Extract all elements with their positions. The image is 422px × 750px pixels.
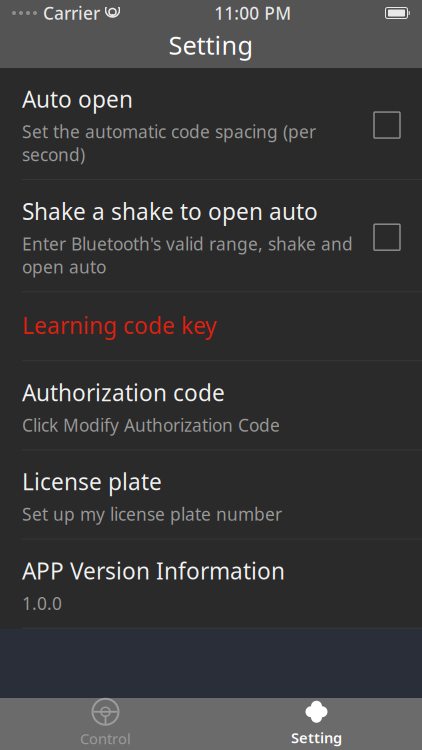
- button[interactable]: Shake a shake to open auto: [0, 180, 422, 292]
- staticText: APP Version Information: [22, 556, 285, 586]
- button[interactable]: License plate: [0, 450, 422, 540]
- staticText: Click Modify Authorization Code: [22, 413, 280, 436]
- staticText: Authorization code: [22, 377, 225, 407]
- staticText: License plate: [22, 466, 162, 497]
- staticText: Enter Bluetooth's valid range, shake and…: [22, 232, 353, 278]
- staticText: 1.0.0: [22, 592, 62, 615]
- staticText: Setting: [291, 728, 342, 747]
- staticText: Control: [80, 729, 131, 748]
- button[interactable]: Authorization code: [0, 361, 422, 450]
- staticText: Carrier: [43, 1, 100, 24]
- button[interactable]: Learning code key: [0, 292, 422, 361]
- button[interactable]: APP Version Information: [0, 540, 422, 629]
- staticText: Set up my license plate number: [22, 503, 282, 526]
- staticText: 11:00 PM: [214, 1, 291, 24]
- staticText: Setting: [168, 28, 253, 62]
- staticText: Auto open: [22, 84, 133, 114]
- button[interactable]: Setting: [211, 693, 422, 750]
- staticText: Set the automatic code spacing (per seco…: [22, 120, 316, 166]
- button[interactable]: Auto open: [0, 68, 422, 180]
- staticText: Learning code key: [22, 310, 217, 340]
- button[interactable]: Control: [0, 692, 211, 750]
- staticText: Shake a shake to open auto: [22, 196, 318, 226]
